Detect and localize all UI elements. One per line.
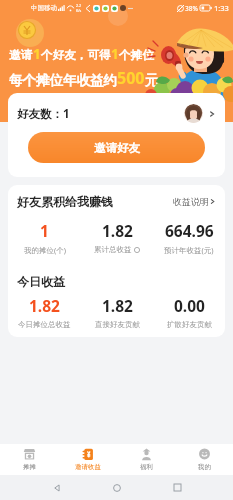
button[interactable]: Friend avatar [184,104,203,123]
staticText: 1 [111,45,119,63]
other: Recents [174,484,181,491]
staticText: 个摊位 [119,48,154,63]
staticText: 个好友，可得 [41,48,111,63]
staticText: 每个摊位年收益约 [9,72,117,89]
button[interactable]: 摊摊 [0,446,59,473]
staticText: 元 [145,72,159,89]
staticText: 0.00 [174,295,205,316]
staticText: 直接好友贡献 [95,320,140,329]
staticText: 1.82 [102,295,133,316]
staticText: 摊摊 [23,463,36,471]
staticText: 我的摊位(个) [24,245,66,255]
staticText: 1:33 [214,3,229,13]
staticText: 1 [33,45,41,63]
staticText: 好友数：1 [17,106,70,122]
staticText: 1.82 [102,220,133,241]
staticText: 38% [185,4,198,13]
staticText: 664.96 [165,220,214,241]
staticText: 邀请好友 [94,141,140,155]
staticText: 我的 [198,463,211,471]
other: Home [113,484,121,492]
staticText: 500 [117,67,145,89]
staticText: 收益说明 [173,196,209,207]
staticText: 邀请 [9,48,33,63]
button[interactable]: 福利 [117,446,175,473]
button[interactable]: 邀请好友 [28,132,205,163]
staticText: 预计年收益(元) [164,245,214,255]
staticText: 福利 [140,463,153,471]
button[interactable]: 我的 [175,446,233,473]
button[interactable]: 邀请收益 [59,446,117,473]
staticText: 2.2 K/s [76,3,82,13]
staticText: 中国移动 [31,4,57,12]
staticText: 1 [40,220,49,241]
staticText: 好友累积给我赚钱 [17,194,113,209]
other: Back [53,484,61,492]
staticText: 累计总收益 [94,245,132,254]
button[interactable]: 收益说明 [173,196,216,207]
staticText: 今日收益 [17,274,65,289]
staticText: 1.82 [29,295,60,316]
staticText: 邀请收益 [75,463,101,471]
staticText: 今日摊位总收益 [18,320,71,329]
staticText: 扩散好友贡献 [167,320,212,329]
